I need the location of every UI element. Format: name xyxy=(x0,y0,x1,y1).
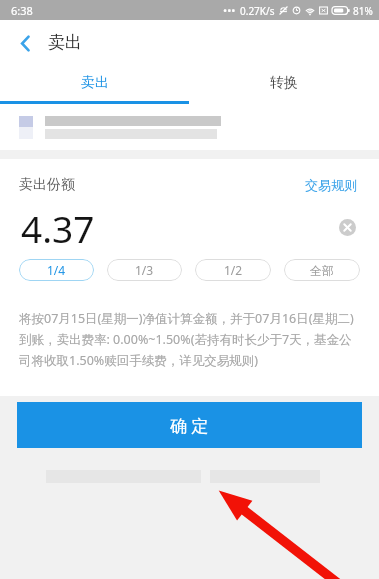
staticText: 1/3 xyxy=(135,262,154,278)
staticText: 4.37 xyxy=(21,203,95,251)
button[interactable]: 交易规则 xyxy=(302,174,360,196)
staticText: 全部 xyxy=(310,263,334,278)
button[interactable]: 1/3 xyxy=(107,259,182,281)
staticText: 确 定 xyxy=(170,414,209,437)
staticText: 卖出 xyxy=(81,74,109,92)
staticText: 0.27K/s xyxy=(240,4,275,18)
staticText: 1/4 xyxy=(47,262,66,278)
button[interactable]: 1/4 xyxy=(19,259,94,281)
staticText: 交易规则 xyxy=(305,177,357,193)
button[interactable]: Clear amount xyxy=(334,214,360,240)
staticText: 卖出 xyxy=(48,32,82,53)
button[interactable]: 1/2 xyxy=(195,259,271,281)
staticText: ••• xyxy=(223,3,236,18)
staticText: 卖出份额 xyxy=(19,176,75,194)
button[interactable] xyxy=(0,104,379,150)
button[interactable]: Back xyxy=(5,23,45,63)
button[interactable]: 卖出 xyxy=(0,65,189,101)
staticText: 81% xyxy=(353,4,373,18)
staticText: 6:38 xyxy=(11,3,33,18)
button[interactable]: 确 定 xyxy=(17,402,362,448)
staticText: 转换 xyxy=(270,74,298,92)
staticText: 将按07月15日(星期一)净值计算金额，并于07月16日(星期二)到账，卖出费率… xyxy=(19,310,363,368)
button[interactable]: 转换 xyxy=(189,65,379,101)
staticText: 1/2 xyxy=(224,262,243,278)
button[interactable]: 全部 xyxy=(284,259,360,281)
